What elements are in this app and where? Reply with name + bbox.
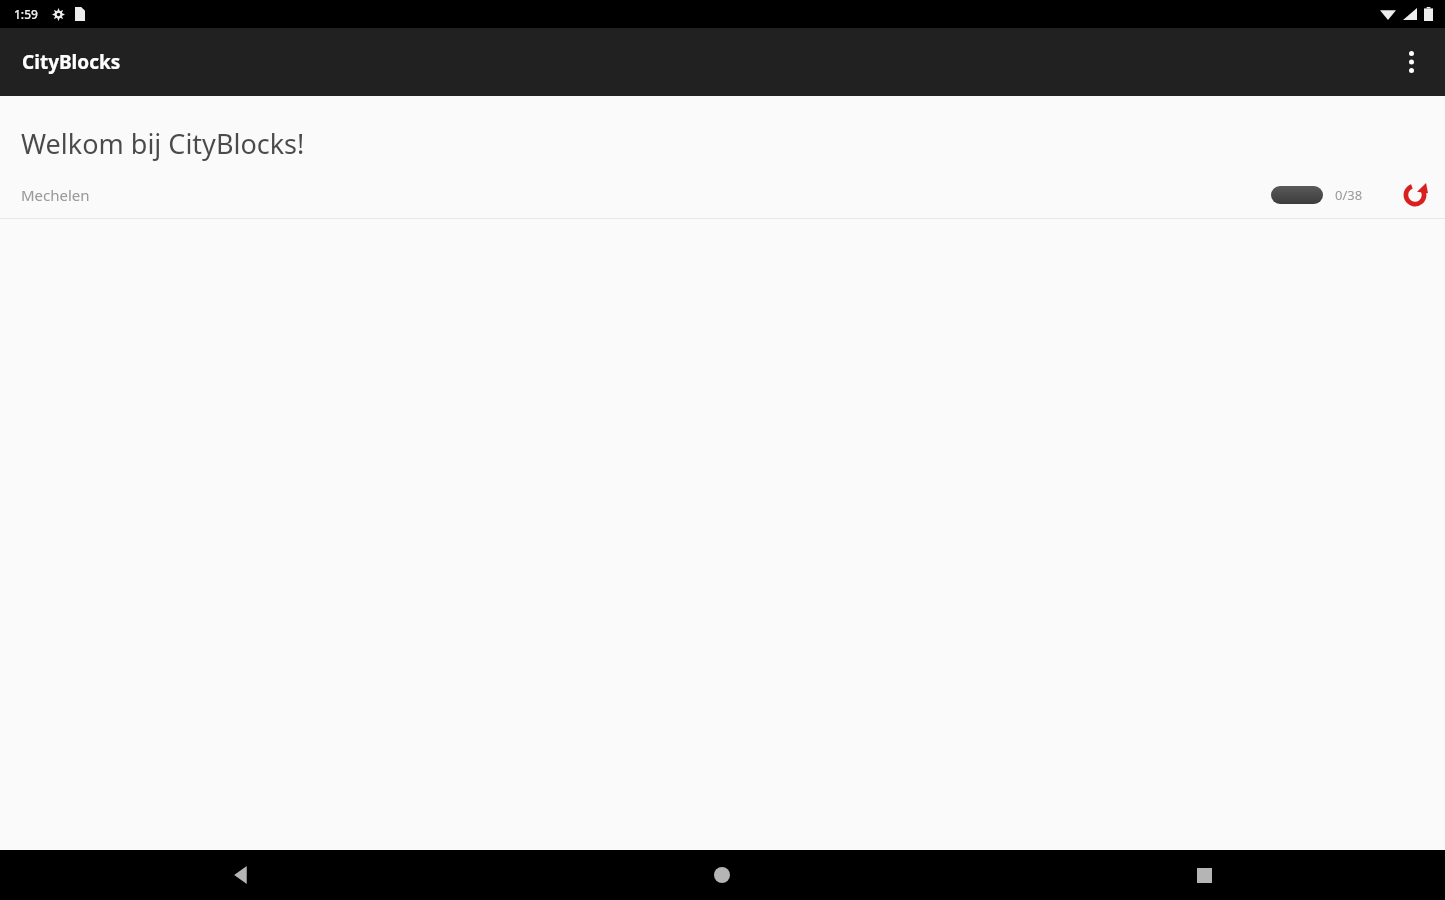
staticText: Mechelen [21, 185, 90, 205]
button[interactable]: Mechelen [0, 172, 1445, 218]
button[interactable]: More options [1387, 38, 1435, 86]
staticText: 1:59 [14, 6, 38, 22]
button[interactable]: Refresh [1395, 175, 1435, 215]
staticText: CityBlocks [22, 49, 121, 75]
button[interactable]: Home [481, 850, 963, 900]
button[interactable]: Back [0, 850, 481, 900]
button[interactable]: Recent apps [963, 850, 1445, 900]
staticText: 0/38 [1335, 186, 1363, 204]
staticText: Welkom bij CityBlocks! [21, 125, 305, 162]
